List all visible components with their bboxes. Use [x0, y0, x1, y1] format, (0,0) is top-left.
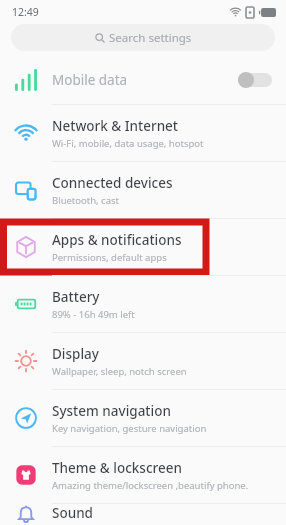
- button[interactable]: System navigation: [0, 390, 286, 446]
- button[interactable]: Display: [0, 333, 286, 389]
- staticText: Sound: [52, 504, 93, 522]
- staticText: Key navigation, gesture navigation: [52, 422, 207, 435]
- button[interactable]: Mobile data: [0, 56, 286, 104]
- staticText: Wallpaper, sleep, notch screen: [52, 365, 187, 378]
- staticText: 12:49: [12, 5, 39, 19]
- button[interactable]: Battery: [0, 276, 286, 332]
- staticText: Bluetooth, cast: [52, 194, 119, 207]
- button[interactable]: Theme & lockscreen: [0, 447, 286, 503]
- button[interactable]: Mobile data toggle: [238, 72, 272, 88]
- button[interactable]: Connected devices: [0, 162, 286, 218]
- staticText: System navigation: [52, 402, 171, 420]
- staticText: Amazing theme/lockscreen ,beautify phone…: [52, 479, 249, 492]
- staticText: Display: [52, 345, 99, 363]
- button[interactable]: Search settings: [11, 24, 275, 51]
- staticText: Mobile data: [52, 71, 238, 89]
- staticText: Wi-Fi, mobile, data usage, hotspot: [52, 137, 204, 150]
- staticText: Network & Internet: [52, 117, 179, 135]
- staticText: Apps & notifications: [52, 231, 182, 249]
- staticText: Theme & lockscreen: [52, 459, 182, 477]
- staticText: 89% - 16h 49m left: [52, 308, 135, 321]
- staticText: Search settings: [109, 30, 192, 46]
- staticText: Connected devices: [52, 174, 173, 192]
- staticText: Permissions, default apps: [52, 251, 167, 264]
- button[interactable]: Network & Internet: [0, 105, 286, 161]
- staticText: Battery: [52, 288, 100, 306]
- button[interactable]: Sound: [0, 504, 286, 525]
